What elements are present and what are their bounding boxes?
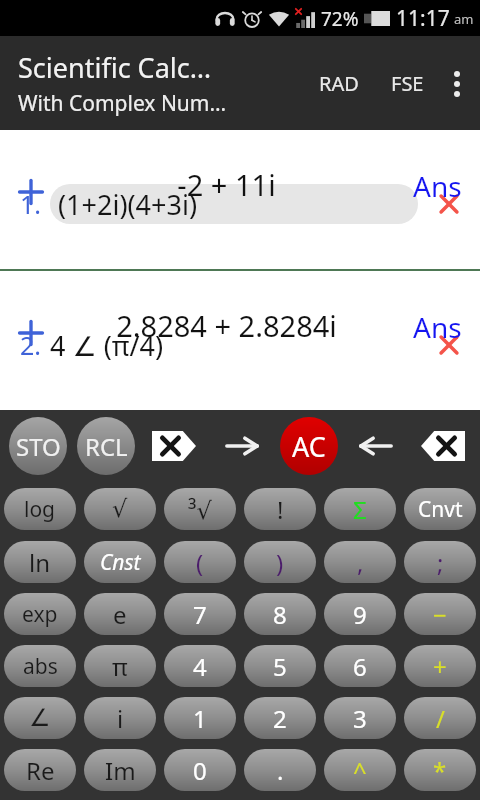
button[interactable]: 5 xyxy=(244,645,316,687)
button[interactable]: STO xyxy=(4,410,72,482)
button[interactable]: Delete entry xyxy=(418,279,480,410)
button[interactable]: 2 xyxy=(244,697,316,739)
staticText: i xyxy=(117,702,124,735)
staticText: 6 xyxy=(353,650,367,683)
staticText: 3 xyxy=(353,702,367,735)
button[interactable]: Add entry xyxy=(0,168,62,216)
staticText: 2. xyxy=(20,328,42,362)
button[interactable]: i xyxy=(84,697,156,739)
button[interactable]: abs xyxy=(4,645,76,687)
button[interactable]: Delete forward xyxy=(140,410,208,482)
staticText: 8 xyxy=(273,598,287,631)
button[interactable]: AC xyxy=(275,410,342,482)
staticText: ln xyxy=(29,546,51,579)
button[interactable]: ) xyxy=(244,541,316,583)
staticText: ) xyxy=(276,546,284,579)
staticText: ∠ xyxy=(29,704,51,732)
staticText: Im xyxy=(105,754,136,787)
staticText: 7 xyxy=(193,598,207,631)
button[interactable]: Cnvt xyxy=(404,488,476,530)
staticText: Ans xyxy=(413,167,462,205)
staticText: e xyxy=(113,598,127,631)
button[interactable]: Move cursor left xyxy=(342,410,409,482)
button[interactable]: ! xyxy=(244,488,316,530)
button[interactable]: Move cursor right xyxy=(208,410,275,482)
staticText: FSE xyxy=(391,70,424,97)
staticText: 1 xyxy=(193,702,207,735)
staticText: Ans xyxy=(413,308,462,346)
staticText: ; xyxy=(437,546,444,579)
button[interactable]: exp xyxy=(4,593,76,635)
staticText: − xyxy=(433,598,447,631)
button[interactable]: Im xyxy=(84,749,156,791)
button[interactable]: 1. xyxy=(0,130,480,269)
staticText: RCL xyxy=(85,430,128,463)
staticText: π xyxy=(112,650,128,683)
button[interactable]: Delete entry xyxy=(418,138,480,269)
staticText: √ xyxy=(112,495,128,523)
button[interactable]: π xyxy=(84,645,156,687)
button[interactable]: 7 xyxy=(164,593,236,635)
button[interactable]: ^ xyxy=(324,749,396,791)
button[interactable]: + xyxy=(404,645,476,687)
staticText: . xyxy=(277,754,284,787)
staticText: 1. xyxy=(20,187,42,221)
staticText: 2 xyxy=(273,702,287,735)
button[interactable]: RAD xyxy=(309,58,369,109)
staticText: exp xyxy=(22,600,58,629)
staticText: 4 ∠ (π/4) xyxy=(50,327,164,364)
staticText: 4 xyxy=(193,650,207,683)
button[interactable]: ³√ xyxy=(164,488,236,530)
staticText: + xyxy=(433,650,447,683)
button[interactable]: Ans xyxy=(394,130,480,253)
button[interactable]: RCL xyxy=(72,410,140,482)
staticText: ³√ xyxy=(188,493,212,526)
staticText: Cnvt xyxy=(418,495,463,524)
staticText: ^ xyxy=(353,754,367,787)
button[interactable]: − xyxy=(404,593,476,635)
staticText: With Complex Num… xyxy=(18,89,227,118)
button[interactable]: Add entry xyxy=(0,309,62,357)
button[interactable]: More options xyxy=(434,61,480,107)
button[interactable]: 2. xyxy=(0,271,480,410)
button[interactable]: * xyxy=(404,749,476,791)
button[interactable]: 6 xyxy=(324,645,396,687)
button[interactable]: 3 xyxy=(324,697,396,739)
button[interactable]: Backspace xyxy=(409,410,476,482)
button[interactable]: Ans xyxy=(394,271,480,394)
staticText: AC xyxy=(292,428,326,465)
button[interactable]: Re xyxy=(4,749,76,791)
button[interactable]: / xyxy=(404,697,476,739)
staticText: log xyxy=(24,495,56,524)
staticText: am xyxy=(454,10,474,28)
staticText: 11:17 xyxy=(396,4,450,33)
staticText: 5 xyxy=(273,650,287,683)
staticText: * xyxy=(433,754,447,787)
button[interactable]: Cnst xyxy=(84,541,156,583)
button[interactable]: 8 xyxy=(244,593,316,635)
button[interactable]: e xyxy=(84,593,156,635)
button[interactable]: ( xyxy=(164,541,236,583)
staticText: Σ xyxy=(353,493,367,526)
button[interactable]: 1 xyxy=(164,697,236,739)
button[interactable]: . xyxy=(244,749,316,791)
staticText: -2 + 11i xyxy=(177,165,276,204)
button[interactable]: 0 xyxy=(164,749,236,791)
staticText: 2.8284 + 2.8284i xyxy=(116,306,337,345)
button[interactable]: ; xyxy=(404,541,476,583)
button[interactable]: , xyxy=(324,541,396,583)
button[interactable]: ∠ xyxy=(4,697,76,739)
staticText: ( xyxy=(196,546,204,579)
button[interactable]: √ xyxy=(84,488,156,530)
button[interactable]: Σ xyxy=(324,488,396,530)
staticText: Scientific Calc… xyxy=(18,49,212,86)
button[interactable]: log xyxy=(4,488,76,530)
button[interactable]: ln xyxy=(4,541,76,583)
button[interactable]: FSE xyxy=(381,58,434,109)
staticText: Re xyxy=(26,754,55,787)
staticText: abs xyxy=(23,652,58,681)
button[interactable]: 4 xyxy=(164,645,236,687)
button[interactable]: 9 xyxy=(324,593,396,635)
staticText: / xyxy=(436,702,445,735)
staticText: ! xyxy=(277,493,284,526)
